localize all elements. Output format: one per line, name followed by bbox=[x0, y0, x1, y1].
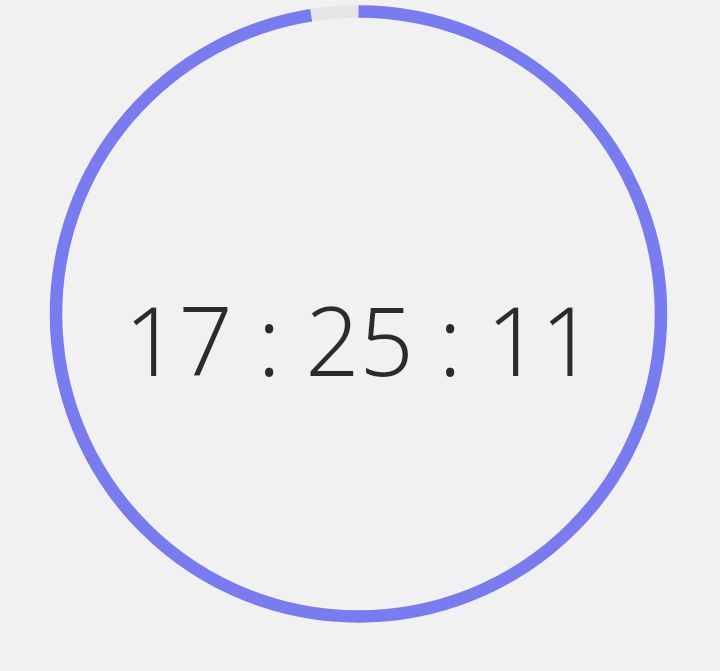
button[interactable]: Countdown timer, 17 hours 25 minutes 11 … bbox=[0, 0, 720, 671]
staticText: 17 : 25 : 11 bbox=[124, 274, 595, 403]
